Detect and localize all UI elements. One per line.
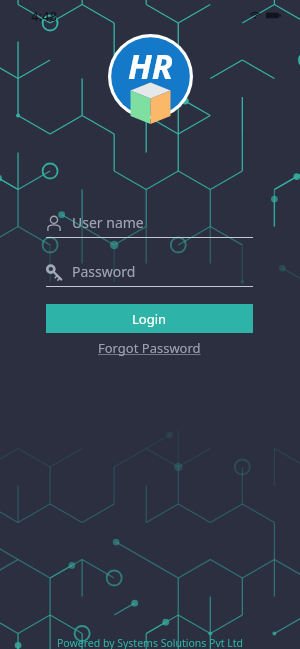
staticText: 4:48 — [31, 7, 57, 25]
staticText: HR — [128, 43, 173, 89]
staticText: Password — [72, 262, 136, 281]
staticText: Login — [132, 310, 167, 328]
staticText: User name — [72, 213, 144, 232]
button[interactable]: Login — [46, 304, 253, 333]
staticText: Powered by Systems Solutions Pvt Ltd — [0, 636, 300, 649]
staticText: Forgot Password — [98, 339, 201, 357]
button[interactable]: Forgot Password — [94, 338, 205, 358]
